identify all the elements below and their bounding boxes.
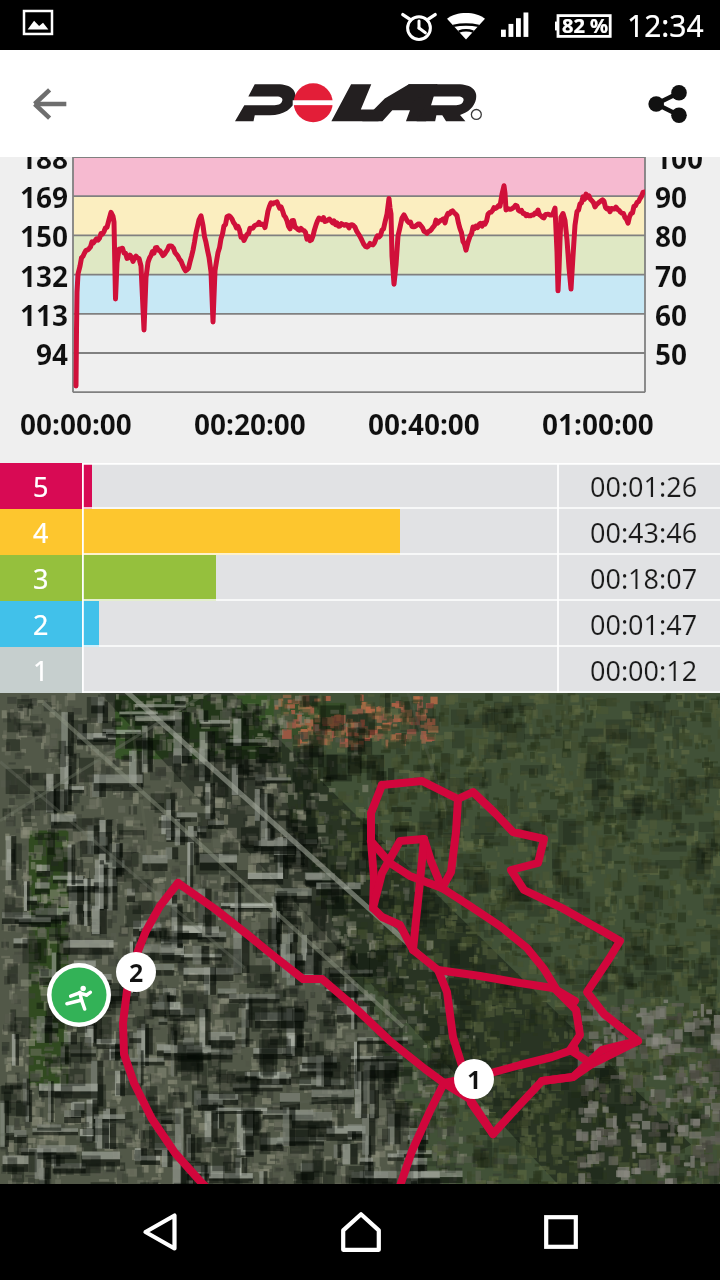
staticText: 150: [20, 217, 69, 253]
button[interactable]: Share: [613, 50, 720, 157]
button[interactable]: Start of run: [0, 693, 720, 1184]
staticText: 1: [33, 652, 49, 689]
button[interactable]: 4: [0, 509, 720, 555]
staticText: 4: [33, 514, 49, 551]
staticText: 1: [467, 1062, 482, 1096]
staticText: 169: [20, 178, 69, 214]
staticText: 188: [20, 157, 69, 175]
staticText: 100: [655, 157, 704, 175]
staticText: 50: [655, 335, 688, 371]
button[interactable]: Start of run: [47, 963, 111, 1027]
button[interactable]: 1: [0, 647, 720, 693]
button[interactable]: 1: [454, 1059, 494, 1099]
staticText: 2: [129, 955, 144, 989]
staticText: 82 %: [562, 12, 609, 39]
button[interactable]: Home: [301, 1184, 421, 1280]
staticText: 01:00:00: [542, 405, 654, 443]
staticText: 94: [36, 335, 69, 371]
button[interactable]: Back: [0, 50, 107, 157]
button[interactable]: 2: [0, 601, 720, 647]
button[interactable]: 3: [0, 555, 720, 601]
staticText: 00:20:00: [194, 405, 306, 443]
staticText: 2: [33, 606, 49, 643]
staticText: 5: [33, 468, 49, 505]
staticText: 132: [20, 257, 69, 293]
staticText: 00:01:47: [590, 606, 698, 643]
staticText: 90: [655, 178, 688, 214]
button[interactable]: 2: [116, 952, 156, 992]
staticText: 70: [655, 257, 688, 293]
staticText: 00:43:46: [590, 514, 698, 551]
staticText: 113: [20, 296, 69, 332]
staticText: 3: [33, 560, 49, 597]
staticText: 00:40:00: [368, 405, 480, 443]
staticText: 00:00:12: [590, 652, 698, 689]
staticText: 80: [655, 217, 688, 253]
button[interactable]: Recent apps: [501, 1184, 621, 1280]
staticText: 00:01:26: [590, 468, 698, 505]
button[interactable]: 5: [0, 463, 720, 509]
staticText: 60: [655, 296, 688, 332]
staticText: 00:00:00: [20, 405, 132, 443]
button[interactable]: Back: [100, 1184, 220, 1280]
staticText: 00:18:07: [590, 560, 698, 597]
staticText: 12:34: [627, 5, 704, 46]
